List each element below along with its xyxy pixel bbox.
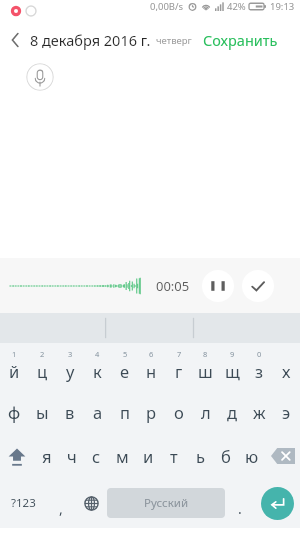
staticText: л [201, 401, 211, 423]
staticText: ш [198, 360, 213, 382]
staticText: й [9, 360, 20, 382]
button[interactable]: 0 [246, 343, 273, 388]
button[interactable]: , [46, 478, 75, 528]
button[interactable]: 1 [0, 343, 28, 388]
staticText: и [143, 445, 154, 467]
staticText: . [238, 499, 242, 518]
button[interactable]: я [34, 433, 59, 478]
staticText: ц [37, 360, 48, 382]
button[interactable]: Enter [261, 487, 294, 520]
staticText: 42% [227, 0, 246, 13]
staticText: 5 [123, 349, 128, 359]
staticText: п [120, 401, 130, 423]
button[interactable]: 4 [84, 343, 111, 388]
button[interactable]: д [219, 388, 246, 433]
staticText: н [146, 360, 157, 382]
staticText: б [221, 445, 231, 467]
staticText: 9 [230, 349, 235, 359]
button[interactable]: ы [28, 388, 56, 433]
button[interactable]: 8 [192, 343, 219, 388]
button[interactable]: а [84, 388, 111, 433]
button[interactable]: э [273, 388, 300, 433]
button[interactable]: с [84, 433, 109, 478]
staticText: ю [245, 445, 259, 467]
staticText: 2 [40, 349, 45, 359]
button[interactable]: т [161, 433, 187, 478]
button[interactable]: 3 [56, 343, 84, 388]
button[interactable]: п [111, 388, 138, 433]
staticText: 19:13 [270, 0, 295, 13]
staticText: к [93, 360, 102, 382]
staticText: 3 [68, 349, 73, 359]
staticText: в [65, 401, 75, 423]
staticText: а [93, 401, 103, 423]
button[interactable]: Shift [0, 433, 34, 478]
staticText: 8 декабря 2016 г. [30, 30, 151, 50]
button[interactable]: м [109, 433, 135, 478]
button[interactable]: 9 [219, 343, 246, 388]
button[interactable]: и [135, 433, 161, 478]
staticText: ь [196, 445, 205, 467]
button[interactable]: в [56, 388, 84, 433]
staticText: я [42, 445, 52, 467]
staticText: с [92, 445, 101, 467]
button[interactable]: Done [242, 270, 274, 302]
button[interactable]: 5 [111, 343, 138, 388]
staticText: э [282, 401, 291, 423]
staticText: 7 [177, 349, 182, 359]
button[interactable]: 2 [28, 343, 56, 388]
staticText: ф [8, 401, 21, 423]
button[interactable]: б [213, 433, 239, 478]
button[interactable]: ю [239, 433, 265, 478]
staticText: Русский [144, 495, 189, 511]
button[interactable]: ?123 [0, 478, 46, 528]
button[interactable]: Сохранить [201, 24, 280, 56]
staticText: 00:05 [156, 277, 190, 295]
button[interactable]: Backspace [265, 433, 300, 478]
staticText: т [170, 445, 178, 467]
staticText: ж [253, 401, 266, 423]
staticText: 0 [257, 349, 262, 359]
staticText: з [255, 360, 264, 382]
staticText: о [174, 401, 184, 423]
staticText: д [227, 401, 238, 423]
button[interactable]: х [273, 343, 300, 388]
staticText: 0,00B/s [150, 0, 184, 13]
staticText: ч [67, 445, 77, 467]
button[interactable]: 7 [165, 343, 192, 388]
staticText: 6 [149, 349, 154, 359]
staticText: у [66, 360, 75, 382]
button[interactable]: Change language [75, 478, 107, 528]
button[interactable]: Back [0, 22, 30, 58]
staticText: щ [225, 360, 240, 382]
staticText: ?123 [11, 495, 36, 511]
button[interactable]: ф [0, 388, 28, 433]
staticText: ы [36, 401, 49, 423]
staticText: г [175, 360, 183, 382]
button[interactable]: Pause [202, 270, 234, 302]
button[interactable]: Record voice [26, 63, 54, 91]
button[interactable]: ж [246, 388, 273, 433]
button[interactable]: . [225, 478, 254, 528]
button[interactable]: о [165, 388, 192, 433]
staticText: е [120, 360, 130, 382]
staticText: р [146, 401, 157, 423]
staticText: 4 [95, 349, 100, 359]
staticText: 8 [203, 349, 208, 359]
staticText: четверг [156, 34, 192, 47]
button[interactable]: ч [59, 433, 84, 478]
button[interactable]: р [138, 388, 165, 433]
button[interactable]: ь [187, 433, 213, 478]
staticText: , [59, 499, 63, 518]
staticText: х [282, 360, 291, 382]
button[interactable]: Русский [107, 488, 225, 518]
staticText: м [116, 445, 129, 467]
staticText: 1 [12, 349, 17, 359]
staticText: Сохранить [203, 30, 278, 50]
button[interactable]: л [192, 388, 219, 433]
button[interactable]: 6 [138, 343, 165, 388]
